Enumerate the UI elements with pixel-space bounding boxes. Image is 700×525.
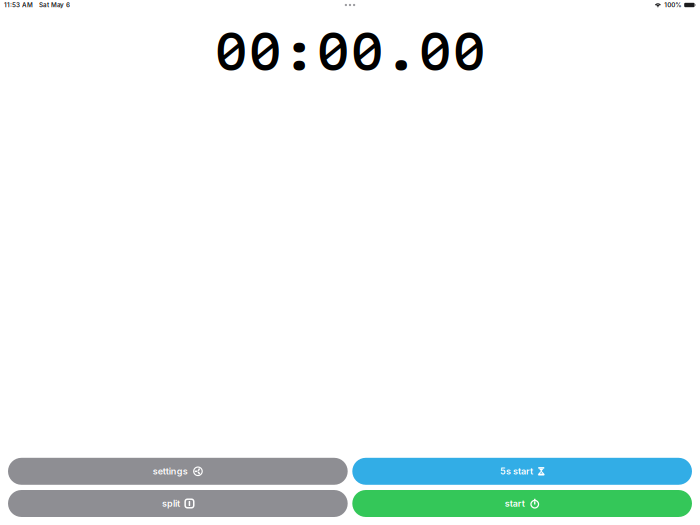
button[interactable]: 5s start <box>352 458 692 485</box>
button[interactable]: start <box>352 490 692 517</box>
staticText: 5s start <box>500 466 533 477</box>
staticText: start <box>505 498 525 509</box>
staticText: 100% <box>664 1 681 9</box>
button[interactable]: split <box>8 490 348 517</box>
staticText: settings <box>153 466 188 477</box>
staticText: 00:00.00 <box>214 8 486 86</box>
staticText: split <box>162 498 180 509</box>
button[interactable]: settings <box>8 458 348 485</box>
staticText: Sat May 6 <box>39 1 70 9</box>
staticText: 11:53 AM <box>4 1 33 9</box>
